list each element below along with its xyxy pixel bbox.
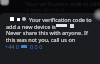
- staticText: +44 0: [5, 43, 20, 50]
- staticText: Your verification code to: [29, 16, 92, 23]
- button[interactable]: Verification code notification: [0, 13, 100, 64]
- staticText: a new device is: [26, 6, 65, 13]
- staticText: this was not you, call us on: [6, 36, 76, 43]
- staticText: 0 0 0: [30, 43, 43, 50]
- staticText: Your verification code to add: [26, 0, 100, 7]
- staticText: Never share this with anyone. If: [6, 29, 88, 36]
- staticText: add a new device is: [6, 23, 56, 30]
